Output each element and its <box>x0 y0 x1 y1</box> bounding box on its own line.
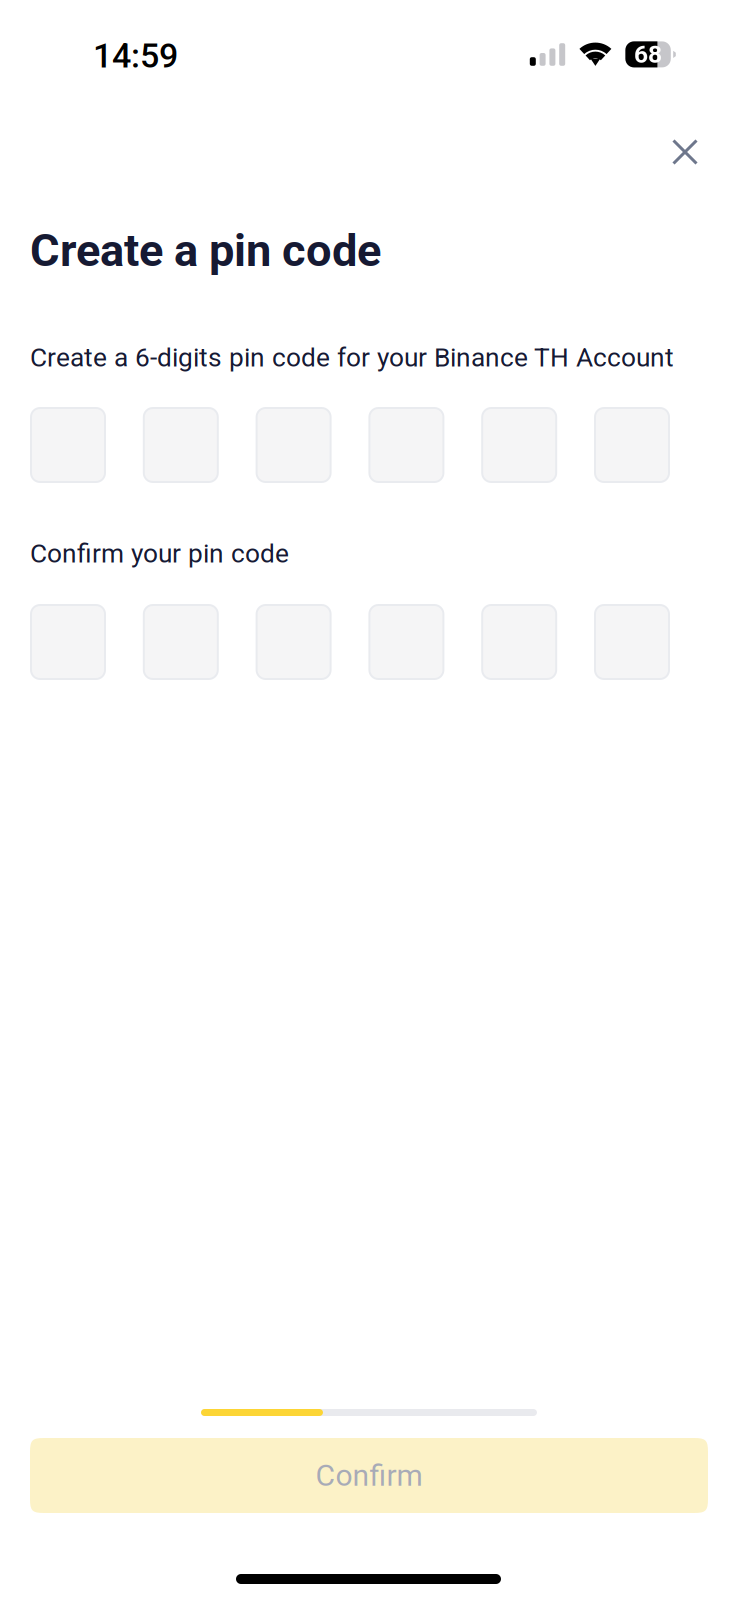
button[interactable]: Close <box>653 120 717 184</box>
staticText: 14:59 <box>93 36 178 76</box>
staticText: Confirm your pin code <box>30 538 289 569</box>
staticText: Confirm <box>315 1458 422 1493</box>
staticText: Create a 6-digits pin code for your Bina… <box>30 342 674 373</box>
staticText: Create a pin code <box>30 224 381 277</box>
button[interactable]: Confirm <box>30 1438 708 1513</box>
staticText: 68 <box>634 40 662 69</box>
